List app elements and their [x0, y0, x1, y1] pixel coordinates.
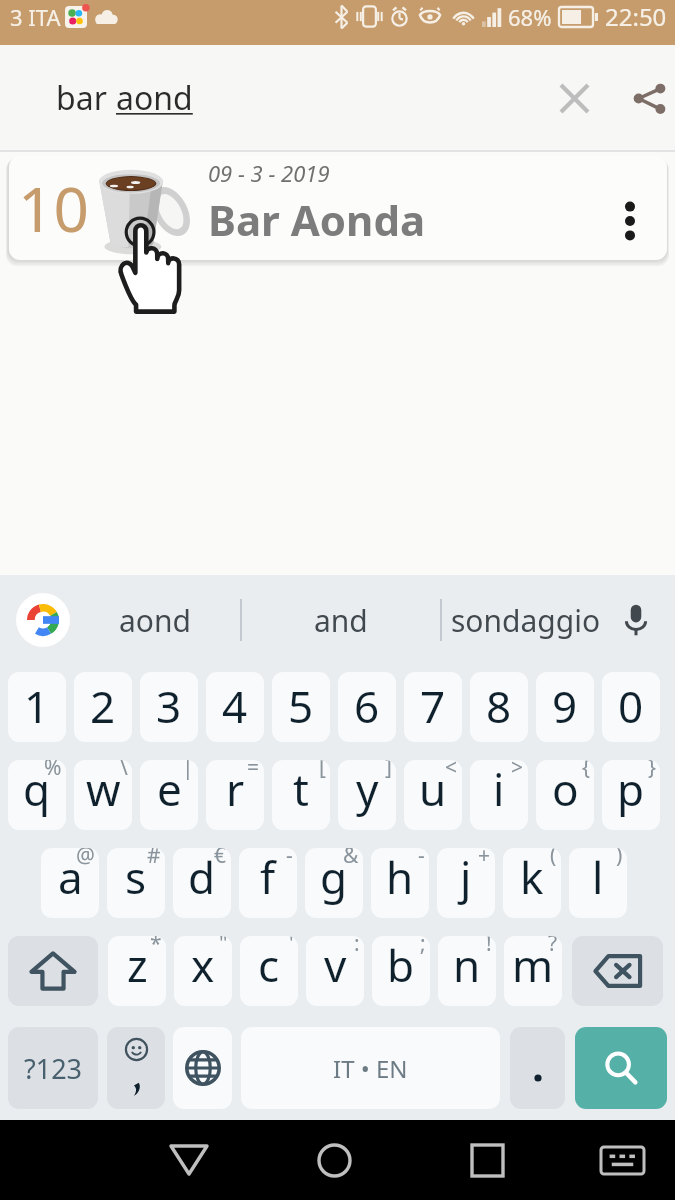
button[interactable]: z [108, 936, 166, 1006]
button[interactable]: Hide keyboard [586, 1124, 658, 1196]
button[interactable]: p [602, 760, 660, 830]
button[interactable]: v [306, 936, 364, 1006]
staticText: p [617, 760, 645, 819]
button[interactable]: s [107, 848, 165, 918]
staticText: 7 [420, 676, 446, 736]
button[interactable]: c [240, 936, 298, 1006]
staticText: 22:50 [605, 0, 667, 33]
button[interactable]: Voice input [609, 593, 663, 647]
button[interactable]: f [239, 848, 297, 918]
button[interactable]: Search [575, 1027, 667, 1109]
staticText: 68% [508, 2, 552, 32]
button[interactable] [510, 1027, 565, 1109]
staticText: z [127, 936, 148, 995]
staticText: c [258, 936, 280, 995]
button[interactable]: sondaggio [442, 575, 609, 665]
button[interactable]: b [372, 936, 430, 1006]
button[interactable]: e [140, 760, 198, 830]
button[interactable]: j [437, 848, 495, 918]
button[interactable]: 6 [338, 672, 396, 742]
staticText: ) [616, 848, 623, 870]
button[interactable]: a [41, 848, 99, 918]
button[interactable]: 10 [9, 156, 667, 260]
staticText: 6 [354, 676, 380, 736]
button[interactable]: aond [70, 575, 240, 665]
button[interactable]: g [305, 848, 363, 918]
staticText: r [226, 760, 245, 819]
staticText: 10 [18, 166, 89, 250]
staticText: 4 [222, 676, 248, 736]
button[interactable]: o [536, 760, 594, 830]
button[interactable]: x [174, 936, 232, 1006]
staticText: 9 [552, 676, 578, 736]
button[interactable]: Home [298, 1124, 370, 1196]
staticText: < [445, 760, 458, 782]
button[interactable]: and [242, 575, 440, 665]
button[interactable]: 3 [140, 672, 198, 742]
button[interactable]: Google [16, 593, 70, 647]
button[interactable]: m [504, 936, 562, 1006]
button[interactable]: Share [619, 70, 675, 126]
button[interactable]: 9 [536, 672, 594, 742]
button[interactable]: 2 [74, 672, 132, 742]
staticText: ] [385, 760, 392, 782]
staticText: & [343, 848, 359, 870]
staticText: 8 [486, 676, 512, 736]
staticText: ?123 [24, 1050, 83, 1087]
staticText: v [324, 936, 347, 995]
staticText: { [582, 760, 590, 782]
button[interactable]: 4 [206, 672, 264, 742]
staticText: ! [486, 936, 492, 958]
staticText: o [552, 760, 579, 819]
staticText: 3 ITA [10, 2, 61, 32]
staticText: > [511, 760, 524, 782]
button[interactable]: d [173, 848, 231, 918]
button[interactable]: w [74, 760, 132, 830]
button[interactable]: h [371, 848, 429, 918]
button[interactable]: Emoji and comma [107, 1027, 165, 1109]
button[interactable]: n [438, 936, 496, 1006]
button[interactable]: i [470, 760, 528, 830]
button[interactable]: Back [153, 1124, 225, 1196]
button[interactable]: Clear [539, 70, 595, 126]
button[interactable]: 8 [470, 672, 528, 742]
staticText: and [314, 600, 368, 641]
button[interactable]: More options [591, 180, 647, 236]
staticText: Bar Aonda [208, 191, 426, 248]
button[interactable]: IT • EN [241, 1027, 500, 1109]
staticText: f [260, 848, 276, 907]
button[interactable]: t [272, 760, 330, 830]
staticText: w [86, 760, 121, 819]
staticText: € [214, 848, 227, 870]
staticText: @ [76, 848, 95, 870]
staticText: 5 [288, 676, 314, 736]
staticText: ' [289, 936, 294, 958]
button[interactable]: Backspace [572, 936, 663, 1006]
staticText: u [419, 760, 447, 819]
button[interactable]: ?123 [8, 1027, 98, 1109]
button[interactable]: 0 [602, 672, 660, 742]
button[interactable]: 7 [404, 672, 462, 742]
button[interactable]: Recents [442, 1124, 514, 1196]
staticText: t [293, 760, 309, 819]
staticText: \ [120, 760, 128, 782]
staticText: ; [420, 936, 426, 958]
staticText: s [125, 848, 147, 907]
button[interactable]: k [503, 848, 561, 918]
staticText: : [354, 936, 360, 958]
button[interactable]: y [338, 760, 396, 830]
staticText: " [219, 936, 228, 958]
staticText: y [356, 760, 379, 819]
button[interactable]: l [569, 848, 627, 918]
staticText: + [478, 848, 491, 870]
button[interactable]: u [404, 760, 462, 830]
button[interactable]: q [8, 760, 66, 830]
staticText: - [418, 848, 425, 870]
button[interactable]: Shift [8, 936, 98, 1006]
staticText: ( [550, 848, 557, 870]
button[interactable]: Change language [173, 1027, 232, 1109]
button[interactable]: 1 [8, 672, 66, 742]
button[interactable]: 5 [272, 672, 330, 742]
button[interactable]: r [206, 760, 264, 830]
staticText: h [386, 848, 414, 907]
